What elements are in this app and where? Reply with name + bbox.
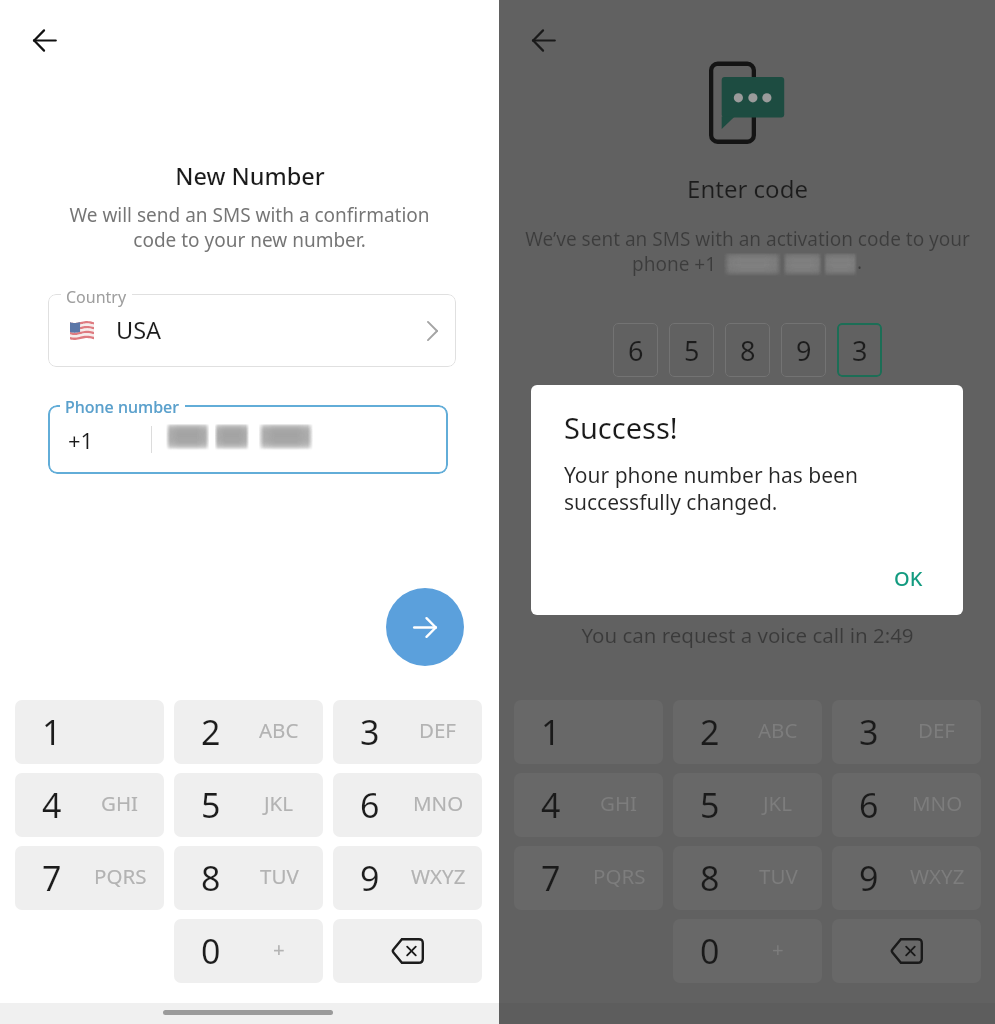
button[interactable]: 7 xyxy=(514,846,663,910)
button[interactable]: 6 xyxy=(333,773,482,837)
staticText: Success! xyxy=(564,408,678,447)
staticText: TUV xyxy=(759,862,798,890)
staticText: 3 xyxy=(852,332,868,369)
button[interactable]: 9 xyxy=(781,323,826,377)
staticText: + xyxy=(273,935,285,963)
staticText: phone +1 xyxy=(632,251,717,277)
button[interactable]: 6 xyxy=(832,773,981,837)
button[interactable]: 5 xyxy=(174,773,323,837)
button[interactable]: 8 xyxy=(673,846,822,910)
button[interactable]: 8 xyxy=(725,323,770,377)
button[interactable]: 2 xyxy=(174,700,323,764)
staticText: 6 xyxy=(360,782,380,828)
staticText: 3 xyxy=(360,709,380,755)
staticText: WXYZ xyxy=(910,862,965,890)
staticText: GHI xyxy=(600,789,638,817)
button[interactable]: 5 xyxy=(669,323,714,377)
staticText: MNO xyxy=(413,789,464,817)
button[interactable]: 1 xyxy=(514,700,663,764)
staticText: 4 xyxy=(42,782,62,828)
button[interactable]: Back xyxy=(525,22,561,58)
button[interactable]: 6 xyxy=(613,323,658,377)
button[interactable]: 3 xyxy=(333,700,482,764)
button[interactable]: +1 xyxy=(48,405,448,474)
staticText: JKL xyxy=(763,789,793,817)
staticText: 4 xyxy=(541,782,561,828)
staticText: 0 xyxy=(700,928,720,974)
button[interactable]: OK xyxy=(874,551,943,606)
staticText: . xyxy=(857,249,863,275)
staticText: Your phone number has been successfully … xyxy=(564,461,876,516)
staticText: New Number xyxy=(175,160,325,192)
staticText: JKL xyxy=(264,789,294,817)
staticText: 2 xyxy=(201,709,221,755)
button[interactable]: USA xyxy=(48,294,456,367)
staticText: TUV xyxy=(260,862,299,890)
staticText: 5 xyxy=(201,782,221,828)
button[interactable]: 2 xyxy=(673,700,822,764)
staticText: 3 xyxy=(859,709,879,755)
staticText: We’ve sent an SMS with an activation cod… xyxy=(525,226,970,252)
staticText: 5 xyxy=(700,782,720,828)
staticText: DEF xyxy=(918,716,956,744)
button[interactable]: Backspace xyxy=(832,919,981,983)
staticText: 9 xyxy=(859,855,879,901)
staticText: We will send an SMS with a confirmation … xyxy=(50,202,449,253)
staticText: 5 xyxy=(684,332,700,369)
staticText: + xyxy=(772,935,784,963)
button[interactable]: 3 xyxy=(837,323,882,377)
staticText: DEF xyxy=(419,716,457,744)
button[interactable]: Next xyxy=(386,588,464,666)
staticText: MNO xyxy=(912,789,963,817)
staticText: 8 xyxy=(700,855,720,901)
button[interactable]: 4 xyxy=(514,773,663,837)
button[interactable]: 4 xyxy=(15,773,164,837)
button[interactable]: 9 xyxy=(832,846,981,910)
button[interactable]: Back xyxy=(26,22,62,58)
button[interactable]: 7 xyxy=(15,846,164,910)
staticText: 8 xyxy=(740,332,756,369)
staticText: 7 xyxy=(42,855,62,901)
staticText: 7 xyxy=(541,855,561,901)
staticText: USA xyxy=(116,314,162,346)
button[interactable]: 0 xyxy=(174,919,323,983)
staticText: 0 xyxy=(201,928,221,974)
staticText: GHI xyxy=(101,789,139,817)
button[interactable]: 9 xyxy=(333,846,482,910)
staticText: OK xyxy=(894,565,923,592)
staticText: +1 xyxy=(68,425,94,455)
button[interactable]: 5 xyxy=(673,773,822,837)
staticText: ABC xyxy=(758,716,798,744)
staticText: 1 xyxy=(42,709,62,755)
staticText: 9 xyxy=(796,332,812,369)
staticText: 2 xyxy=(700,709,720,755)
button[interactable]: 0 xyxy=(673,919,822,983)
button[interactable]: 1 xyxy=(15,700,164,764)
staticText: 6 xyxy=(628,332,644,369)
staticText: 1 xyxy=(541,709,561,755)
staticText: PQRS xyxy=(94,862,147,890)
staticText: Phone number xyxy=(65,396,180,418)
staticText: 8 xyxy=(201,855,221,901)
staticText: ABC xyxy=(259,716,299,744)
staticText: 9 xyxy=(360,855,380,901)
staticText: 6 xyxy=(859,782,879,828)
staticText: WXYZ xyxy=(411,862,466,890)
staticText: Enter code xyxy=(687,172,808,205)
staticText: PQRS xyxy=(593,862,646,890)
button[interactable]: 8 xyxy=(174,846,323,910)
button[interactable]: 3 xyxy=(832,700,981,764)
staticText: You can request a voice call in 2:49 xyxy=(581,621,914,649)
button[interactable]: Backspace xyxy=(333,919,482,983)
staticText: Country xyxy=(66,286,127,308)
